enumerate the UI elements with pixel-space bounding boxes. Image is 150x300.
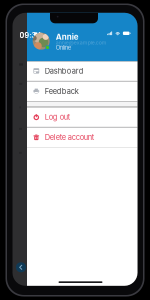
button[interactable]: Dashboard (27, 61, 137, 81)
staticText: Feedback (45, 87, 79, 96)
staticText: Online (56, 44, 71, 51)
staticText: 09:34 (19, 31, 41, 40)
staticText: Dashboard (45, 67, 84, 76)
staticText: Log out (45, 113, 70, 122)
staticText: 09:34 (19, 31, 41, 40)
button[interactable]: Delete account (27, 127, 137, 147)
button[interactable]: Feedback (27, 81, 137, 101)
staticText: annie@example.com (56, 39, 107, 46)
button[interactable]: Log out (27, 107, 137, 127)
staticText: Annie (56, 32, 79, 42)
staticText: Delete account (45, 133, 94, 142)
